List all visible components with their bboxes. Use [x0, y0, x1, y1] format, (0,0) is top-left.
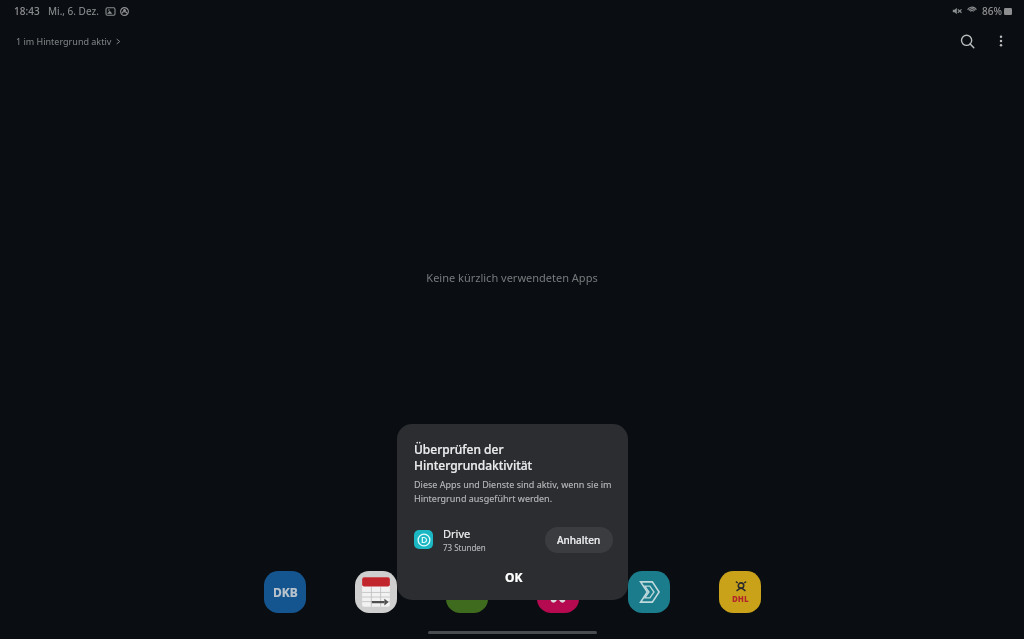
button[interactable]: Rechner — [446, 571, 488, 613]
staticText: 73 Stunden — [443, 542, 486, 553]
button[interactable]: OK — [414, 564, 613, 590]
staticText: 1 im Hintergrund aktiv — [16, 35, 112, 47]
button[interactable]: Blume — [537, 571, 579, 613]
button[interactable]: Mehr Optionen — [984, 24, 1018, 58]
button[interactable]: App — [628, 571, 670, 613]
button[interactable]: Anhalten — [545, 527, 613, 553]
button[interactable]: iCal Import — [355, 571, 397, 613]
staticText: DHL — [732, 593, 749, 604]
staticText: Überprüfen der Hintergrundaktivität — [414, 441, 613, 473]
staticText: 18:43 — [14, 4, 40, 18]
button[interactable]: DKB — [264, 571, 306, 613]
button[interactable]: Drive — [414, 526, 613, 553]
staticText: Diese Apps und Dienste sind aktiv, wenn … — [414, 478, 613, 505]
staticText: DKB — [273, 584, 298, 600]
button[interactable]: DHL — [719, 571, 761, 613]
staticText: Keine kürzlich verwendeten Apps — [426, 270, 598, 285]
staticText: 86% — [982, 4, 1002, 18]
button[interactable]: Suchen — [950, 24, 984, 58]
button[interactable]: 1 im Hintergrund aktiv — [10, 31, 128, 51]
staticText: Drive — [443, 526, 471, 541]
staticText: Mi., 6. Dez. — [48, 4, 99, 18]
staticText: Anhalten — [557, 533, 601, 547]
staticText: OK — [505, 569, 523, 585]
